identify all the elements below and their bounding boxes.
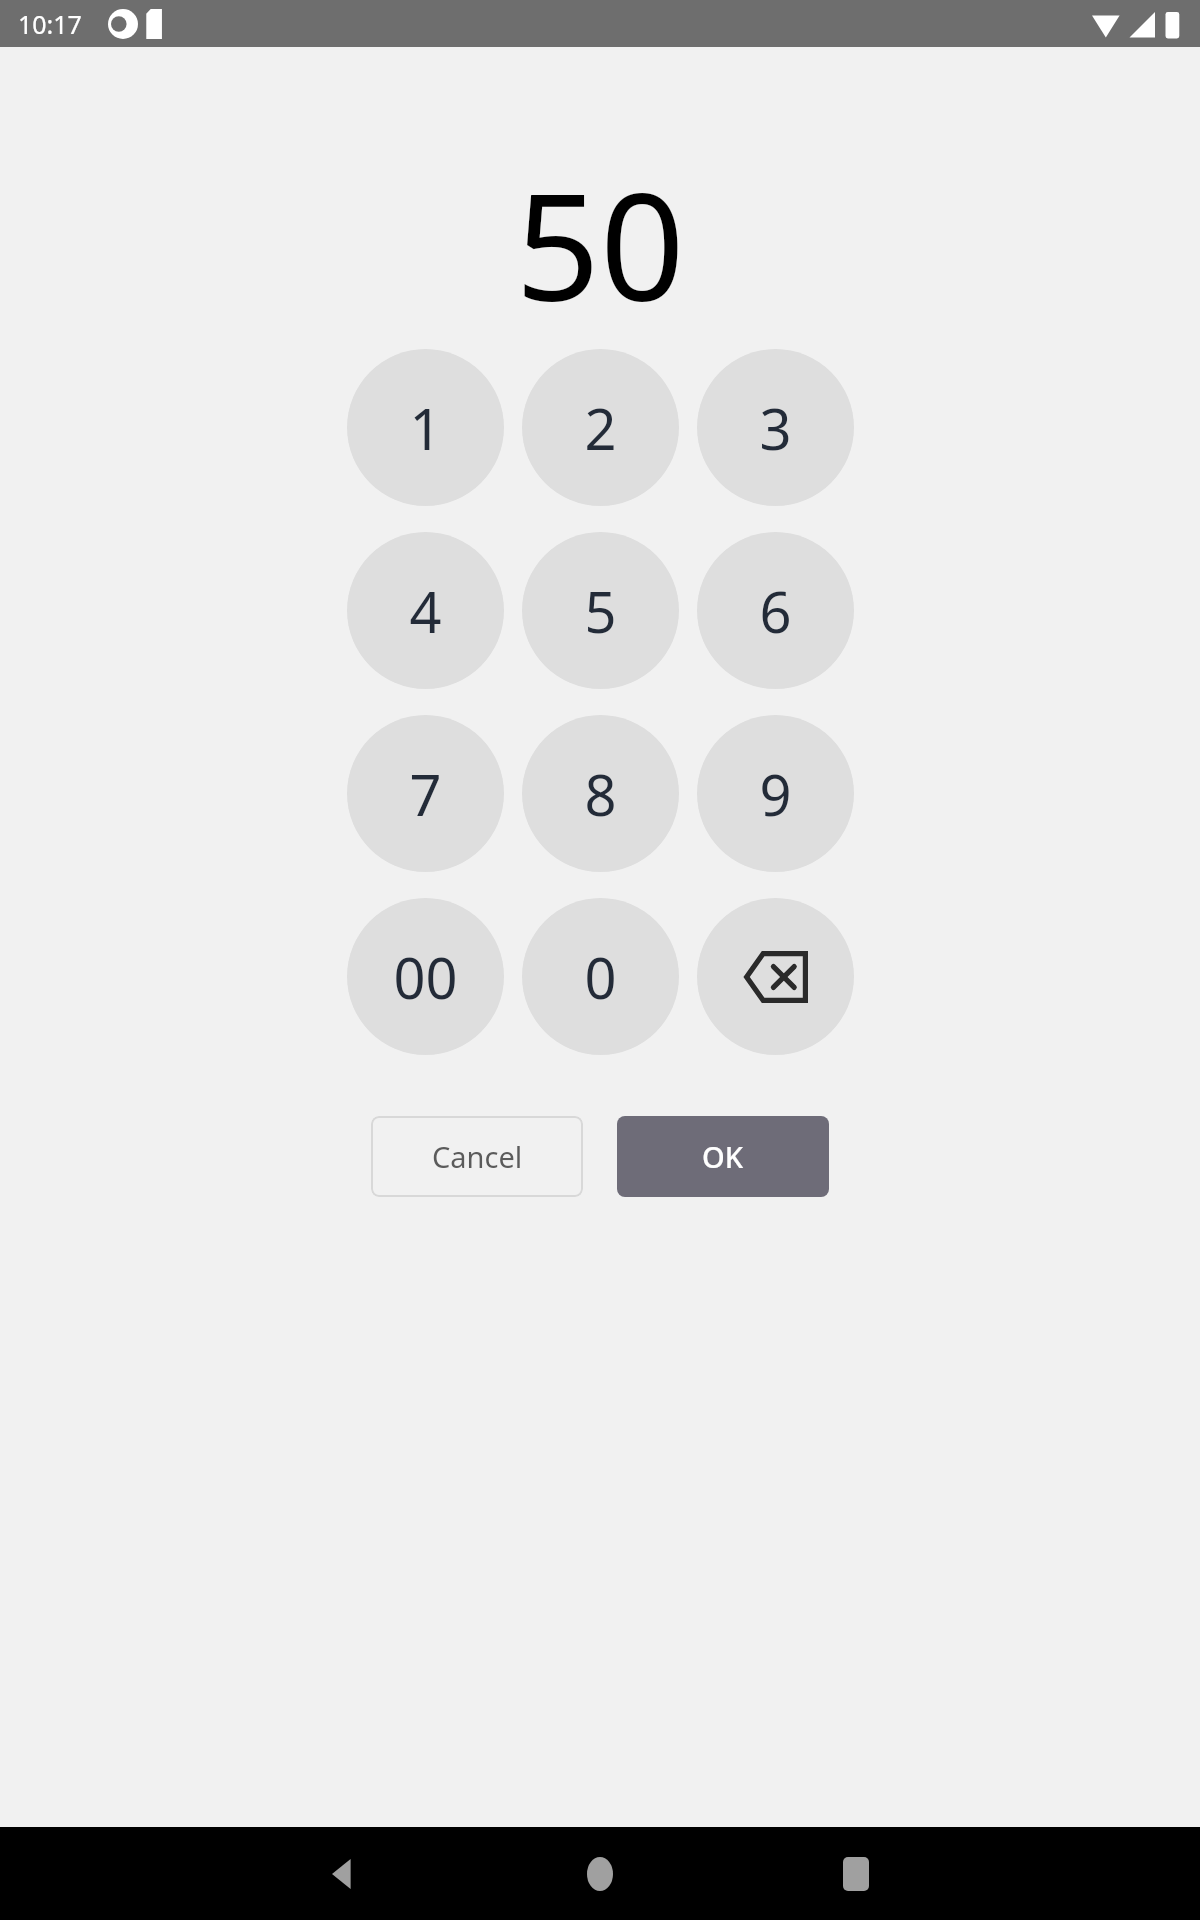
button[interactable]: Recent apps bbox=[808, 1827, 904, 1920]
staticText: 6 bbox=[759, 573, 792, 649]
staticText: 4 bbox=[409, 573, 442, 649]
staticText: 8 bbox=[584, 756, 617, 832]
staticText: Cancel bbox=[432, 1137, 523, 1176]
button[interactable]: OK bbox=[617, 1116, 829, 1197]
button[interactable]: 3 bbox=[697, 349, 854, 506]
staticText: 9 bbox=[759, 756, 792, 832]
staticText: OK bbox=[702, 1137, 744, 1176]
staticText: 10:17 bbox=[18, 7, 82, 41]
button[interactable]: Backspace bbox=[697, 898, 854, 1055]
button[interactable]: 2 bbox=[522, 349, 679, 506]
button[interactable]: 9 bbox=[697, 715, 854, 872]
button[interactable]: 4 bbox=[347, 532, 504, 689]
staticText: 7 bbox=[409, 756, 442, 832]
staticText: 5 bbox=[584, 573, 617, 649]
button[interactable]: 7 bbox=[347, 715, 504, 872]
staticText: 3 bbox=[759, 390, 792, 466]
button[interactable]: 0 bbox=[522, 898, 679, 1055]
staticText: 50 bbox=[515, 143, 685, 311]
button[interactable]: 1 bbox=[347, 349, 504, 506]
staticText: 0 bbox=[584, 939, 617, 1015]
button[interactable]: Home bbox=[552, 1827, 648, 1920]
button[interactable]: 6 bbox=[697, 532, 854, 689]
staticText: 1 bbox=[409, 390, 442, 466]
staticText: 00 bbox=[393, 939, 458, 1015]
button[interactable]: 8 bbox=[522, 715, 679, 872]
button[interactable]: 5 bbox=[522, 532, 679, 689]
button[interactable]: Cancel bbox=[371, 1116, 583, 1197]
button[interactable]: Back bbox=[296, 1827, 392, 1920]
button[interactable]: 00 bbox=[347, 898, 504, 1055]
staticText: 2 bbox=[584, 390, 617, 466]
